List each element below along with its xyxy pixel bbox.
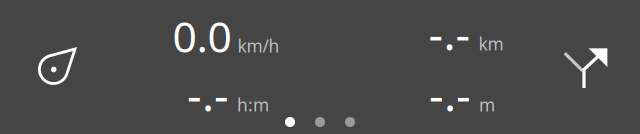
button[interactable]: Navigation xyxy=(562,46,610,94)
staticText: -.- xyxy=(187,64,229,124)
staticText: -.- xyxy=(428,3,470,63)
staticText: h:m xyxy=(237,93,269,116)
staticText: -.- xyxy=(429,64,471,124)
button[interactable]: Compass xyxy=(39,48,79,88)
staticText: km/h xyxy=(237,34,279,57)
staticText: 0.0 xyxy=(172,8,231,64)
staticText: m xyxy=(479,93,495,116)
staticText: km xyxy=(478,32,503,55)
